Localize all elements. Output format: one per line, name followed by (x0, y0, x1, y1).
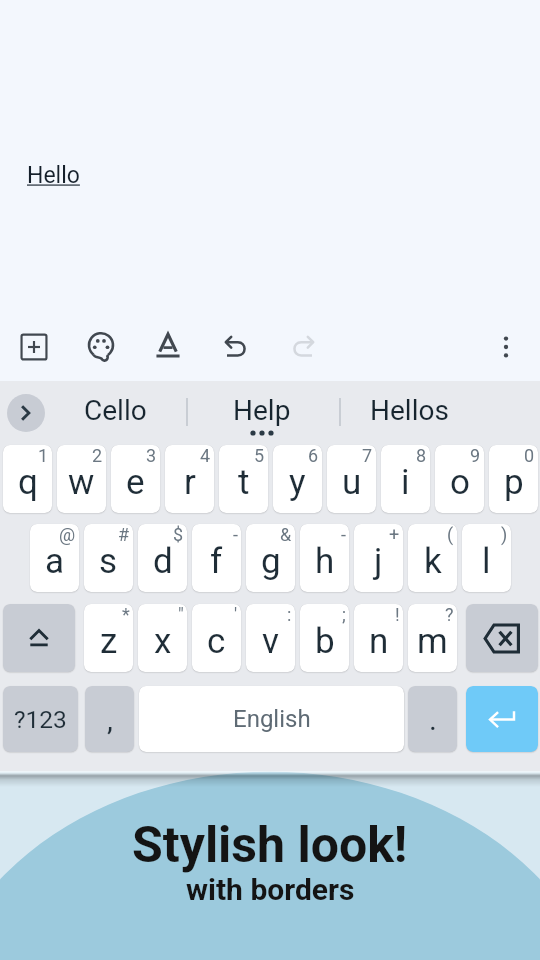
button[interactable]: ? (408, 604, 457, 672)
button[interactable]: ! (354, 604, 403, 672)
staticText: z (100, 621, 118, 662)
staticText: Hello (27, 162, 80, 189)
staticText: y (289, 462, 306, 503)
staticText: 1 (38, 445, 49, 466)
button[interactable]: $ (138, 524, 187, 592)
staticText: ( (447, 524, 454, 545)
button[interactable]: Hellos (344, 381, 474, 445)
button[interactable]: More options (482, 323, 530, 371)
staticText: " (178, 604, 184, 625)
button[interactable]: 7 (327, 445, 376, 513)
staticText: Hellos (370, 394, 449, 427)
button[interactable]: ( (408, 524, 457, 592)
button[interactable]: + (354, 524, 403, 592)
staticText: 5 (254, 445, 265, 466)
button[interactable]: ' (192, 604, 241, 672)
button[interactable]: , (85, 686, 134, 752)
staticText: # (118, 524, 130, 545)
button[interactable]: Text style (144, 323, 192, 371)
staticText: , (107, 702, 113, 737)
button[interactable]: 6 (273, 445, 322, 513)
staticText: ! (395, 604, 400, 625)
staticText: ' (234, 604, 238, 625)
staticText: j (374, 541, 383, 582)
button[interactable]: - (300, 524, 349, 592)
button[interactable]: 2 (57, 445, 106, 513)
staticText: - (341, 524, 346, 545)
staticText: e (126, 462, 145, 503)
button[interactable]: Add (10, 323, 58, 371)
button[interactable]: English (139, 686, 404, 752)
button[interactable]: & (246, 524, 295, 592)
staticText: m (417, 621, 448, 662)
button[interactable]: 9 (435, 445, 484, 513)
staticText: & (280, 524, 292, 545)
staticText: t (238, 462, 250, 503)
staticText: f (210, 541, 223, 582)
staticText: p (504, 462, 524, 503)
staticText: with borders (186, 872, 355, 907)
staticText: w (68, 462, 95, 503)
staticText: : (287, 604, 292, 625)
button[interactable]: Expand toolbar (7, 394, 45, 432)
staticText: o (450, 462, 470, 503)
staticText: 7 (362, 445, 373, 466)
button[interactable]: . (408, 686, 457, 752)
staticText: $ (173, 524, 184, 545)
button[interactable]: ; (300, 604, 349, 672)
staticText: d (153, 541, 173, 582)
staticText: b (315, 621, 335, 662)
staticText: Stylish look! (132, 816, 408, 875)
staticText: Help (233, 394, 291, 427)
button[interactable]: Redo (279, 323, 327, 371)
staticText: English (233, 705, 311, 733)
staticText: r (184, 462, 196, 503)
button[interactable]: Cello (50, 381, 181, 445)
button[interactable]: : (246, 604, 295, 672)
staticText: g (261, 541, 281, 582)
staticText: @ (59, 524, 76, 545)
button[interactable]: Theme (77, 323, 125, 371)
button[interactable]: Enter (466, 686, 538, 752)
button[interactable]: Backspace (466, 604, 538, 672)
staticText: ?123 (14, 705, 67, 734)
button[interactable]: ) (462, 524, 511, 592)
button[interactable]: 1 (3, 445, 52, 513)
staticText: i (401, 462, 410, 503)
button[interactable]: # (84, 524, 133, 592)
staticText: ? (445, 604, 454, 625)
button[interactable]: 0 (489, 445, 538, 513)
staticText: . (429, 702, 437, 737)
staticText: k (424, 541, 442, 582)
button[interactable]: ?123 (3, 686, 78, 752)
staticText: x (154, 621, 172, 662)
button[interactable]: Undo (212, 323, 260, 371)
staticText: - (233, 524, 238, 545)
button[interactable]: @ (30, 524, 79, 592)
button[interactable]: - (192, 524, 241, 592)
button[interactable]: 5 (219, 445, 268, 513)
button[interactable]: " (138, 604, 187, 672)
button[interactable]: Help (186, 381, 338, 445)
staticText: 8 (416, 445, 427, 466)
button[interactable]: * (84, 604, 133, 672)
staticText: a (45, 541, 65, 582)
staticText: u (342, 462, 362, 503)
staticText: 4 (200, 445, 211, 466)
button[interactable]: 3 (111, 445, 160, 513)
staticText: v (262, 621, 279, 662)
staticText: ; (342, 604, 346, 625)
staticText: ) (501, 524, 508, 545)
staticText: 9 (470, 445, 481, 466)
button[interactable]: Shift (3, 604, 75, 672)
staticText: * (122, 604, 130, 625)
staticText: l (482, 541, 491, 582)
staticText: q (18, 462, 38, 503)
staticText: + (389, 524, 400, 545)
staticText: Cello (84, 394, 147, 427)
staticText: h (315, 541, 335, 582)
button[interactable]: 4 (165, 445, 214, 513)
staticText: s (99, 541, 118, 582)
button[interactable]: 8 (381, 445, 430, 513)
staticText: c (207, 621, 226, 662)
